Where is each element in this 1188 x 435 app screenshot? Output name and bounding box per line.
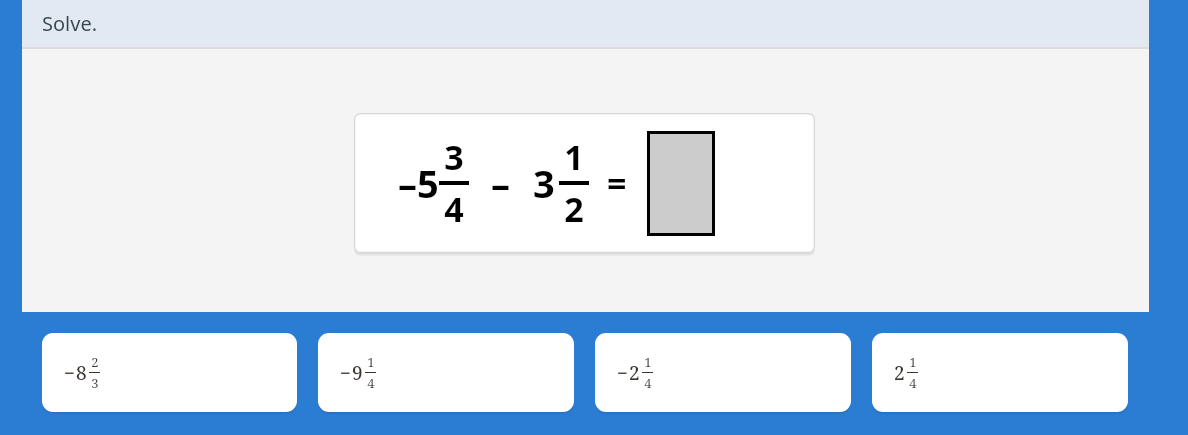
button[interactable]: − [42,333,297,412]
staticText: 2 [564,186,584,232]
staticText: 9 [352,360,363,386]
staticText: = [607,160,627,206]
staticText: 4 [909,374,917,392]
staticText: 2 [91,353,99,371]
button[interactable]: Answer blank [647,131,715,236]
staticText: − [64,360,76,386]
staticText: 3 [444,134,464,180]
staticText: 4 [367,374,375,392]
staticText: − [617,360,629,386]
button[interactable]: 2 [872,333,1128,412]
staticText: 2 [629,360,640,386]
staticText: – [491,157,511,209]
staticText: 1 [644,353,652,371]
staticText: 4 [444,186,464,232]
staticText: − [340,360,352,386]
staticText: 8 [76,360,87,386]
staticText: 1 [367,353,375,371]
button[interactable]: − [318,333,574,412]
staticText: 3 [533,157,555,209]
staticText: 4 [644,374,652,392]
staticText: Solve. [42,10,98,37]
staticText: 2 [894,360,905,386]
button[interactable]: − [595,333,851,412]
staticText: –5 [398,157,439,209]
staticText: 1 [564,134,584,180]
staticText: 1 [909,353,917,371]
staticText: 3 [91,374,99,392]
